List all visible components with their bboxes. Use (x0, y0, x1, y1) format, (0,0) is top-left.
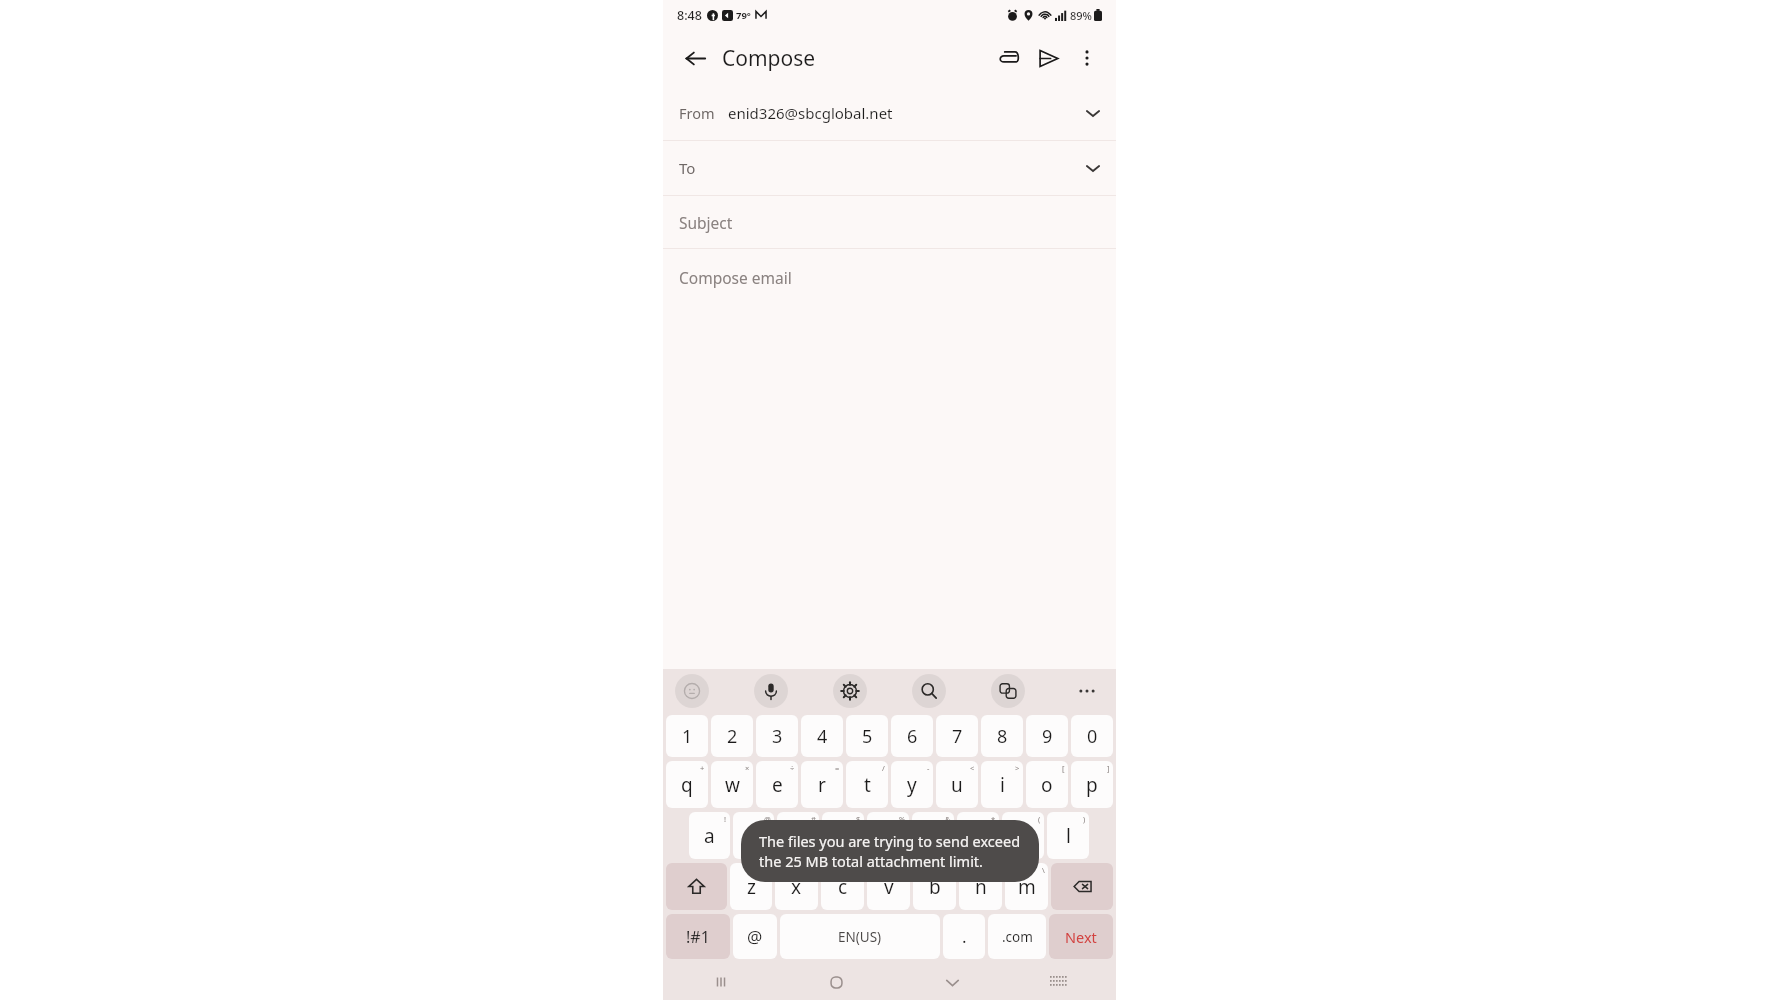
button[interactable]: . (943, 914, 985, 959)
button[interactable]: q (666, 761, 708, 808)
staticText: The files you are trying to send exceed … (759, 831, 1021, 871)
button[interactable]: Shift (666, 863, 727, 910)
button[interactable]: 8 (981, 715, 1023, 757)
button[interactable]: 3 (756, 715, 798, 757)
button[interactable]: !#1 (666, 914, 730, 959)
button[interactable]: i (981, 761, 1023, 808)
button[interactable]: Emoji (675, 674, 709, 708)
button[interactable]: f (822, 812, 864, 859)
staticText: * (991, 814, 996, 824)
staticText: : (812, 865, 815, 875)
staticText: 8 (997, 724, 1008, 749)
button[interactable]: l (1047, 812, 1089, 859)
staticText: v (884, 874, 894, 900)
button[interactable]: w (711, 761, 753, 808)
staticText: j (976, 823, 981, 849)
button[interactable]: .com (988, 914, 1046, 959)
button[interactable]: Home (778, 964, 894, 1000)
button[interactable]: g (867, 812, 909, 859)
button[interactable]: h (912, 812, 954, 859)
staticText: # (811, 814, 816, 824)
staticText: ; (858, 865, 861, 875)
staticText: f (840, 823, 847, 849)
button[interactable]: t (846, 761, 888, 808)
button[interactable]: 7 (936, 715, 978, 757)
staticText: s (749, 823, 759, 849)
button[interactable]: 9 (1026, 715, 1068, 757)
button[interactable]: Hide keyboard (894, 964, 1010, 1000)
staticText: u (951, 772, 963, 798)
button[interactable]: Backspace (1051, 863, 1113, 910)
button[interactable]: @ (733, 914, 777, 959)
staticText: + (700, 763, 705, 773)
staticText: w (725, 772, 740, 798)
button[interactable]: Translate (991, 674, 1025, 708)
staticText: 7 (952, 724, 963, 749)
staticText: k (1018, 823, 1029, 849)
staticText: x (791, 874, 802, 900)
button[interactable]: j (957, 812, 999, 859)
button[interactable]: Subject (663, 196, 1116, 248)
staticText: d (792, 823, 804, 849)
button[interactable]: Keyboard settings (833, 674, 867, 708)
button[interactable]: e (756, 761, 798, 808)
staticText: 3 (772, 724, 783, 749)
button[interactable]: 0 (1071, 715, 1113, 757)
button[interactable]: r (801, 761, 843, 808)
button[interactable]: z (730, 863, 772, 910)
button[interactable]: p (1071, 761, 1113, 808)
button[interactable]: Send (1028, 38, 1068, 78)
button[interactable]: Search (912, 674, 946, 708)
staticText: \ (1042, 865, 1045, 875)
button[interactable]: 6 (891, 715, 933, 757)
staticText: To (679, 158, 696, 178)
staticText: 0 (1087, 724, 1098, 749)
button[interactable]: n (959, 863, 1002, 910)
staticText: i (1000, 772, 1005, 798)
staticText: h (927, 823, 939, 849)
staticText: c (838, 874, 848, 900)
button[interactable]: s (733, 812, 774, 859)
button[interactable]: EN(US) (780, 914, 940, 959)
button[interactable]: Compose email (663, 249, 1116, 669)
button[interactable]: More keyboard options (1070, 674, 1104, 708)
button[interactable]: d (777, 812, 819, 859)
button[interactable]: Back (675, 38, 715, 78)
staticText: > (1015, 763, 1020, 773)
staticText: !#1 (686, 926, 710, 948)
button[interactable]: c (821, 863, 864, 910)
button[interactable]: Change keyboard (1010, 964, 1108, 1000)
button[interactable]: To (663, 141, 1116, 195)
button[interactable]: a (689, 812, 730, 859)
staticText: Subject (679, 212, 733, 233)
button[interactable]: Attach file (988, 38, 1028, 78)
staticText: 5 (862, 724, 873, 749)
button[interactable]: 1 (666, 715, 708, 757)
staticText: " (903, 865, 907, 875)
staticText: .com (1002, 928, 1033, 946)
button[interactable]: Voice input (754, 674, 788, 708)
button[interactable]: 4 (801, 715, 843, 757)
staticText: - (927, 763, 930, 773)
staticText: 89% (1070, 8, 1092, 23)
staticText: m (1018, 874, 1036, 900)
staticText: ÷ (790, 763, 795, 773)
button[interactable]: From (663, 86, 1116, 140)
staticText: % (899, 814, 906, 824)
button[interactable]: More options (1068, 39, 1106, 77)
button[interactable]: k (1002, 812, 1044, 859)
button[interactable]: Next (1049, 914, 1113, 959)
button[interactable]: 2 (711, 715, 753, 757)
staticText: l (1066, 823, 1071, 849)
button[interactable]: b (913, 863, 956, 910)
button[interactable]: x (775, 863, 818, 910)
button[interactable]: v (867, 863, 910, 910)
staticText: 8:48 (677, 7, 702, 24)
button[interactable]: o (1026, 761, 1068, 808)
button[interactable]: u (936, 761, 978, 808)
staticText: z (747, 874, 756, 900)
button[interactable]: 5 (846, 715, 888, 757)
button[interactable]: Recent apps (663, 964, 778, 1000)
button[interactable]: y (891, 761, 933, 808)
button[interactable]: m (1005, 863, 1048, 910)
